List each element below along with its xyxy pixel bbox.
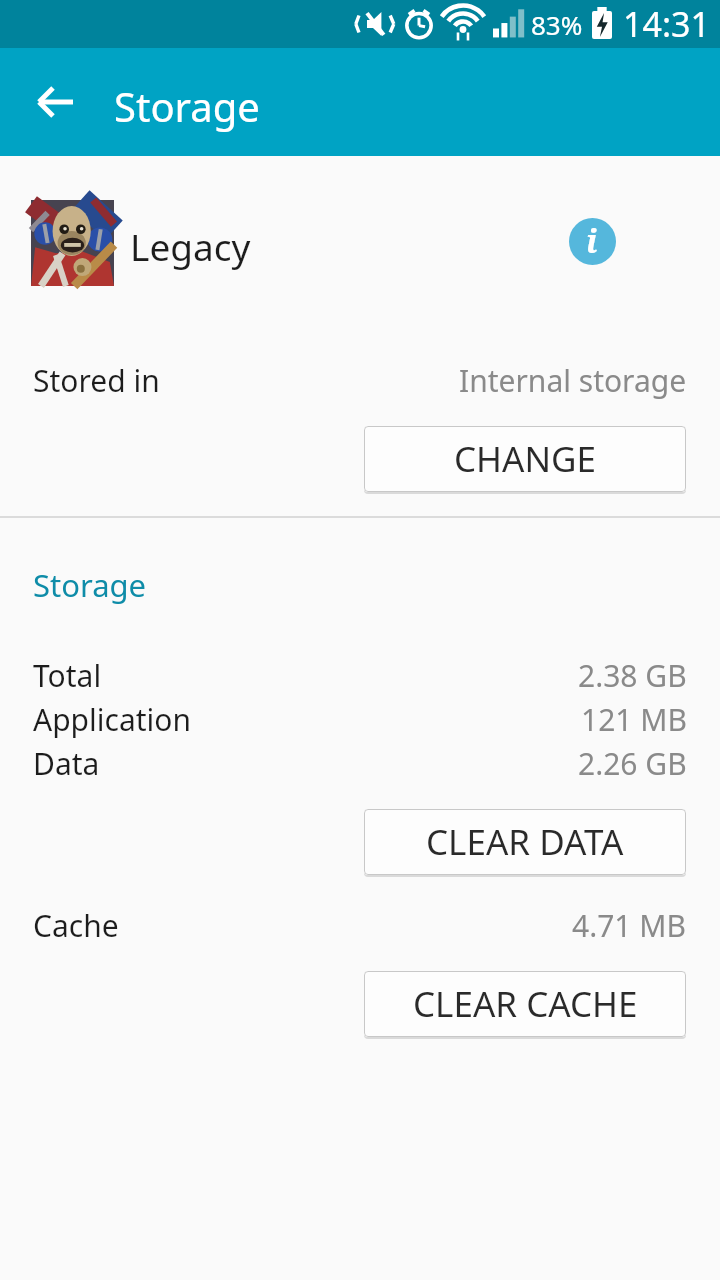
staticText: Cache xyxy=(33,905,119,946)
button[interactable]: CHANGE xyxy=(364,426,686,492)
staticText: 2.26 GB xyxy=(578,743,687,784)
staticText: 14:31 xyxy=(623,1,710,47)
staticText: CHANGE xyxy=(454,435,596,483)
staticText: 121 MB xyxy=(581,699,687,740)
staticText: 2.38 GB xyxy=(578,655,687,696)
staticText: CLEAR CACHE xyxy=(413,980,638,1028)
staticText: Legacy xyxy=(130,221,251,271)
staticText: i xyxy=(586,219,598,263)
staticText: Storage xyxy=(33,564,147,606)
staticText: 83% xyxy=(531,7,583,42)
staticText: Total xyxy=(33,655,102,696)
staticText: CLEAR DATA xyxy=(426,818,624,866)
staticText: 4.71 MB xyxy=(572,905,687,946)
button[interactable]: CLEAR CACHE xyxy=(364,971,686,1037)
staticText: Data xyxy=(33,743,100,784)
button[interactable]: CLEAR DATA xyxy=(364,809,686,875)
staticText: Storage xyxy=(114,79,260,133)
staticText: Application xyxy=(33,699,192,740)
button[interactable] xyxy=(20,66,92,138)
staticText: Internal storage xyxy=(459,360,687,401)
staticText: Stored in xyxy=(33,360,160,401)
button[interactable]: i xyxy=(569,218,616,265)
